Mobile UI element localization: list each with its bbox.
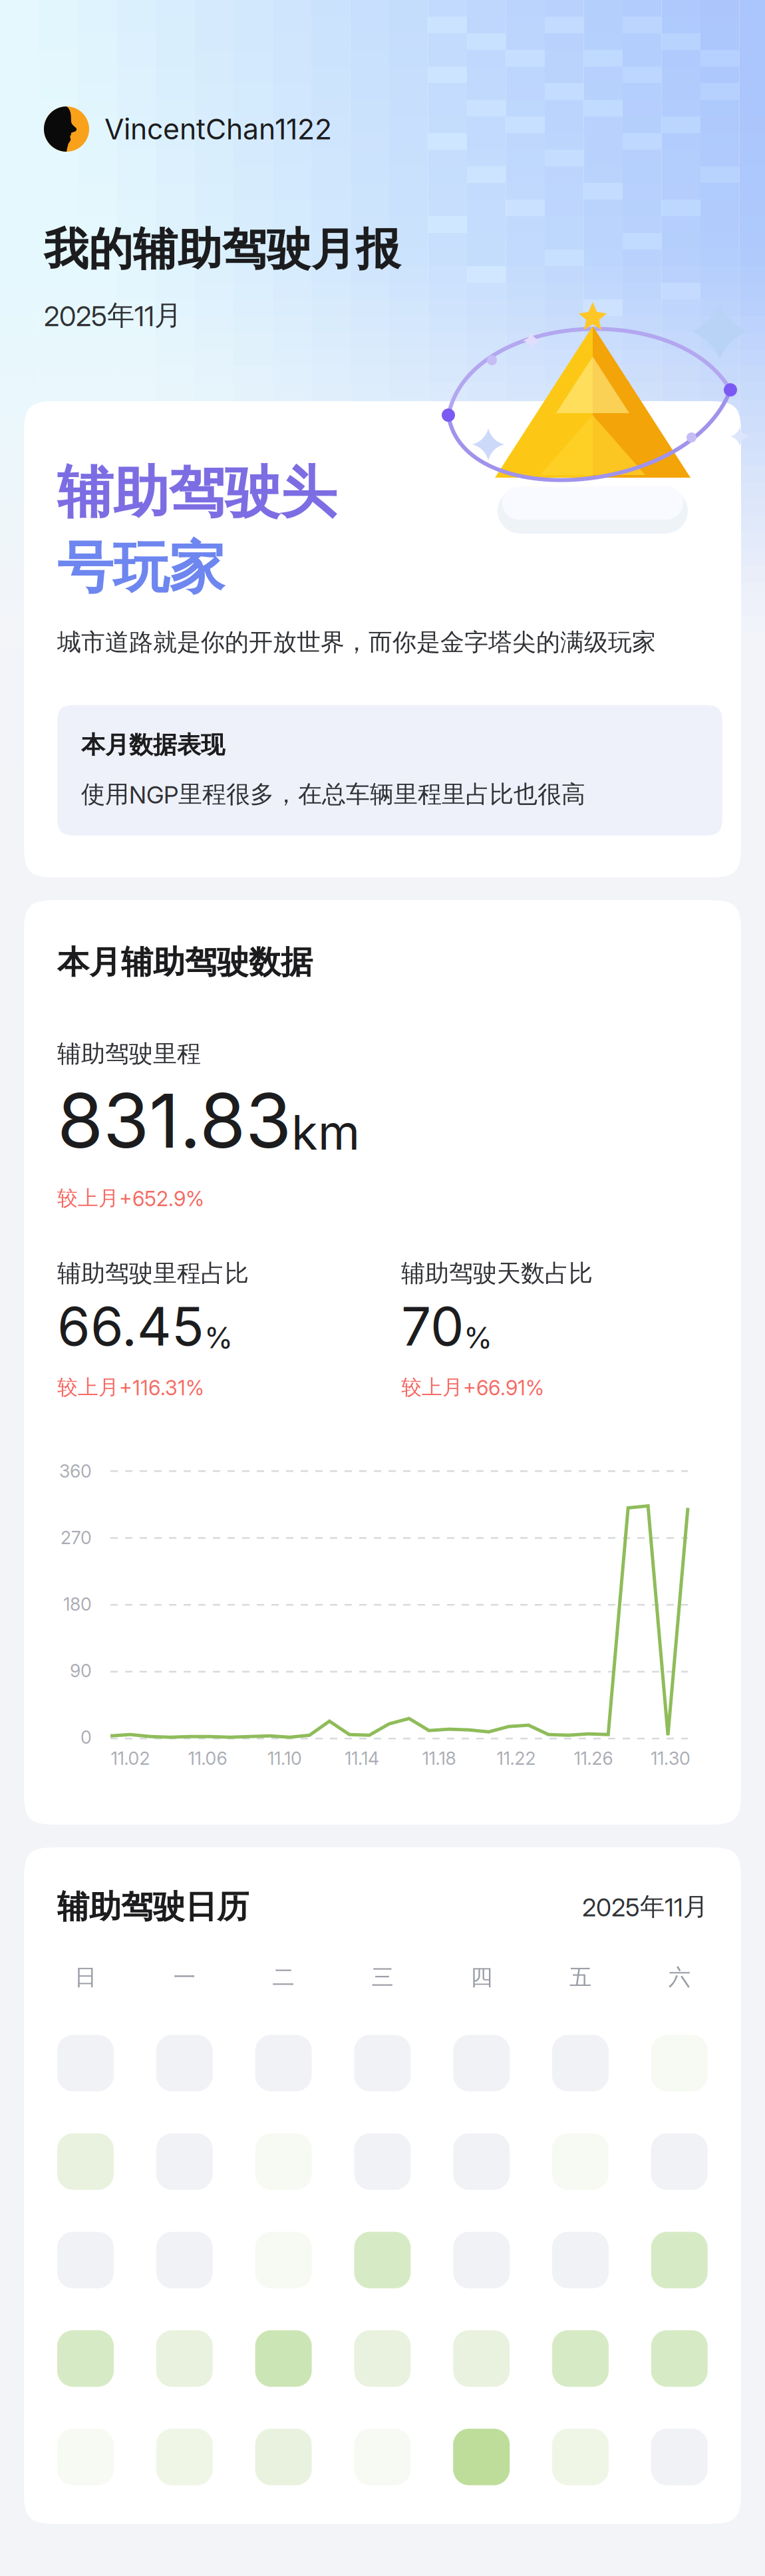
- staticText: 360: [59, 1461, 92, 1482]
- staticText: 11.22: [497, 1748, 536, 1769]
- staticText: 90: [70, 1660, 92, 1681]
- staticText: 日: [75, 1964, 96, 1991]
- staticText: 11.14: [345, 1748, 379, 1769]
- staticText: km: [291, 1104, 360, 1160]
- staticText: 本月辅助驾驶数据: [57, 943, 313, 982]
- staticText: 2025年11月: [582, 1892, 708, 1922]
- staticText: 较上月+66.91%: [401, 1375, 544, 1400]
- staticText: 11.02: [111, 1748, 150, 1769]
- staticText: 66.45: [57, 1295, 204, 1358]
- button[interactable]: VincentChan1122: [44, 106, 332, 152]
- staticText: 辅助驾驶日历: [57, 1887, 249, 1926]
- staticText: VincentChan1122: [104, 112, 332, 146]
- staticText: %: [464, 1320, 492, 1355]
- staticText: 70: [401, 1295, 464, 1358]
- staticText: 较上月+116.31%: [57, 1375, 204, 1400]
- staticText: 号玩家: [57, 534, 225, 602]
- staticText: %: [204, 1320, 233, 1355]
- staticText: 11.26: [574, 1748, 613, 1769]
- staticText: 11.18: [422, 1748, 456, 1769]
- staticText: 使用NGP里程很多，在总车辆里程里占比也很高: [81, 780, 585, 809]
- staticText: 270: [61, 1527, 92, 1548]
- staticText: 六: [668, 1964, 690, 1991]
- staticText: 11.30: [651, 1748, 690, 1769]
- staticText: 0: [80, 1727, 92, 1748]
- staticText: 三: [371, 1964, 393, 1991]
- staticText: 二: [272, 1964, 294, 1991]
- staticText: 辅助驾驶天数占比: [401, 1259, 593, 1288]
- staticText: 831.83: [57, 1077, 291, 1164]
- staticText: 五: [569, 1964, 591, 1991]
- staticText: 我的辅助驾驶月报: [44, 222, 400, 277]
- staticText: 辅助驾驶头: [57, 458, 337, 527]
- staticText: 辅助驾驶里程占比: [57, 1259, 249, 1288]
- staticText: 本月数据表现: [81, 730, 225, 760]
- staticText: 2025年11月: [44, 299, 182, 332]
- staticText: 较上月+652.9%: [57, 1186, 204, 1211]
- staticText: 180: [63, 1594, 92, 1615]
- staticText: 11.06: [188, 1748, 227, 1769]
- staticText: 一: [173, 1964, 195, 1991]
- staticText: 城市道路就是你的开放世界，而你是金字塔尖的满级玩家: [57, 628, 656, 657]
- staticText: 四: [470, 1964, 492, 1991]
- staticText: 11.10: [267, 1748, 302, 1769]
- staticText: 辅助驾驶里程: [57, 1039, 201, 1069]
